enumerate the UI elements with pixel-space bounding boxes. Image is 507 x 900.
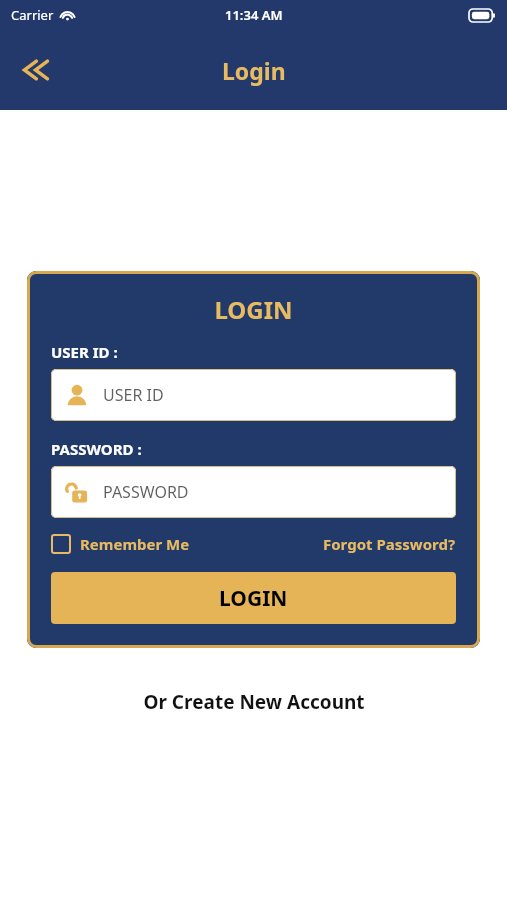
staticText: USER ID xyxy=(103,384,164,406)
staticText: Carrier xyxy=(11,6,54,24)
button[interactable]: Forgot Password? xyxy=(323,534,456,554)
staticText: PASSWORD : xyxy=(51,439,142,459)
staticText: Remember Me xyxy=(80,534,190,554)
staticText: LOGIN xyxy=(27,293,480,326)
button[interactable]: Password field xyxy=(51,466,456,518)
staticText: 11:34 AM xyxy=(225,6,283,24)
button[interactable]: LOGIN xyxy=(51,572,456,624)
button[interactable]: Or Create New Account xyxy=(0,689,507,715)
staticText: LOGIN xyxy=(219,584,288,613)
staticText: Or Create New Account xyxy=(143,689,365,715)
staticText: PASSWORD xyxy=(103,481,189,503)
button[interactable]: User ID field xyxy=(51,369,456,421)
button[interactable]: Remember Me xyxy=(51,534,190,554)
staticText: Login xyxy=(222,55,286,86)
button[interactable]: Back xyxy=(8,44,60,96)
staticText: Forgot Password? xyxy=(323,534,456,554)
staticText: USER ID : xyxy=(51,342,118,362)
